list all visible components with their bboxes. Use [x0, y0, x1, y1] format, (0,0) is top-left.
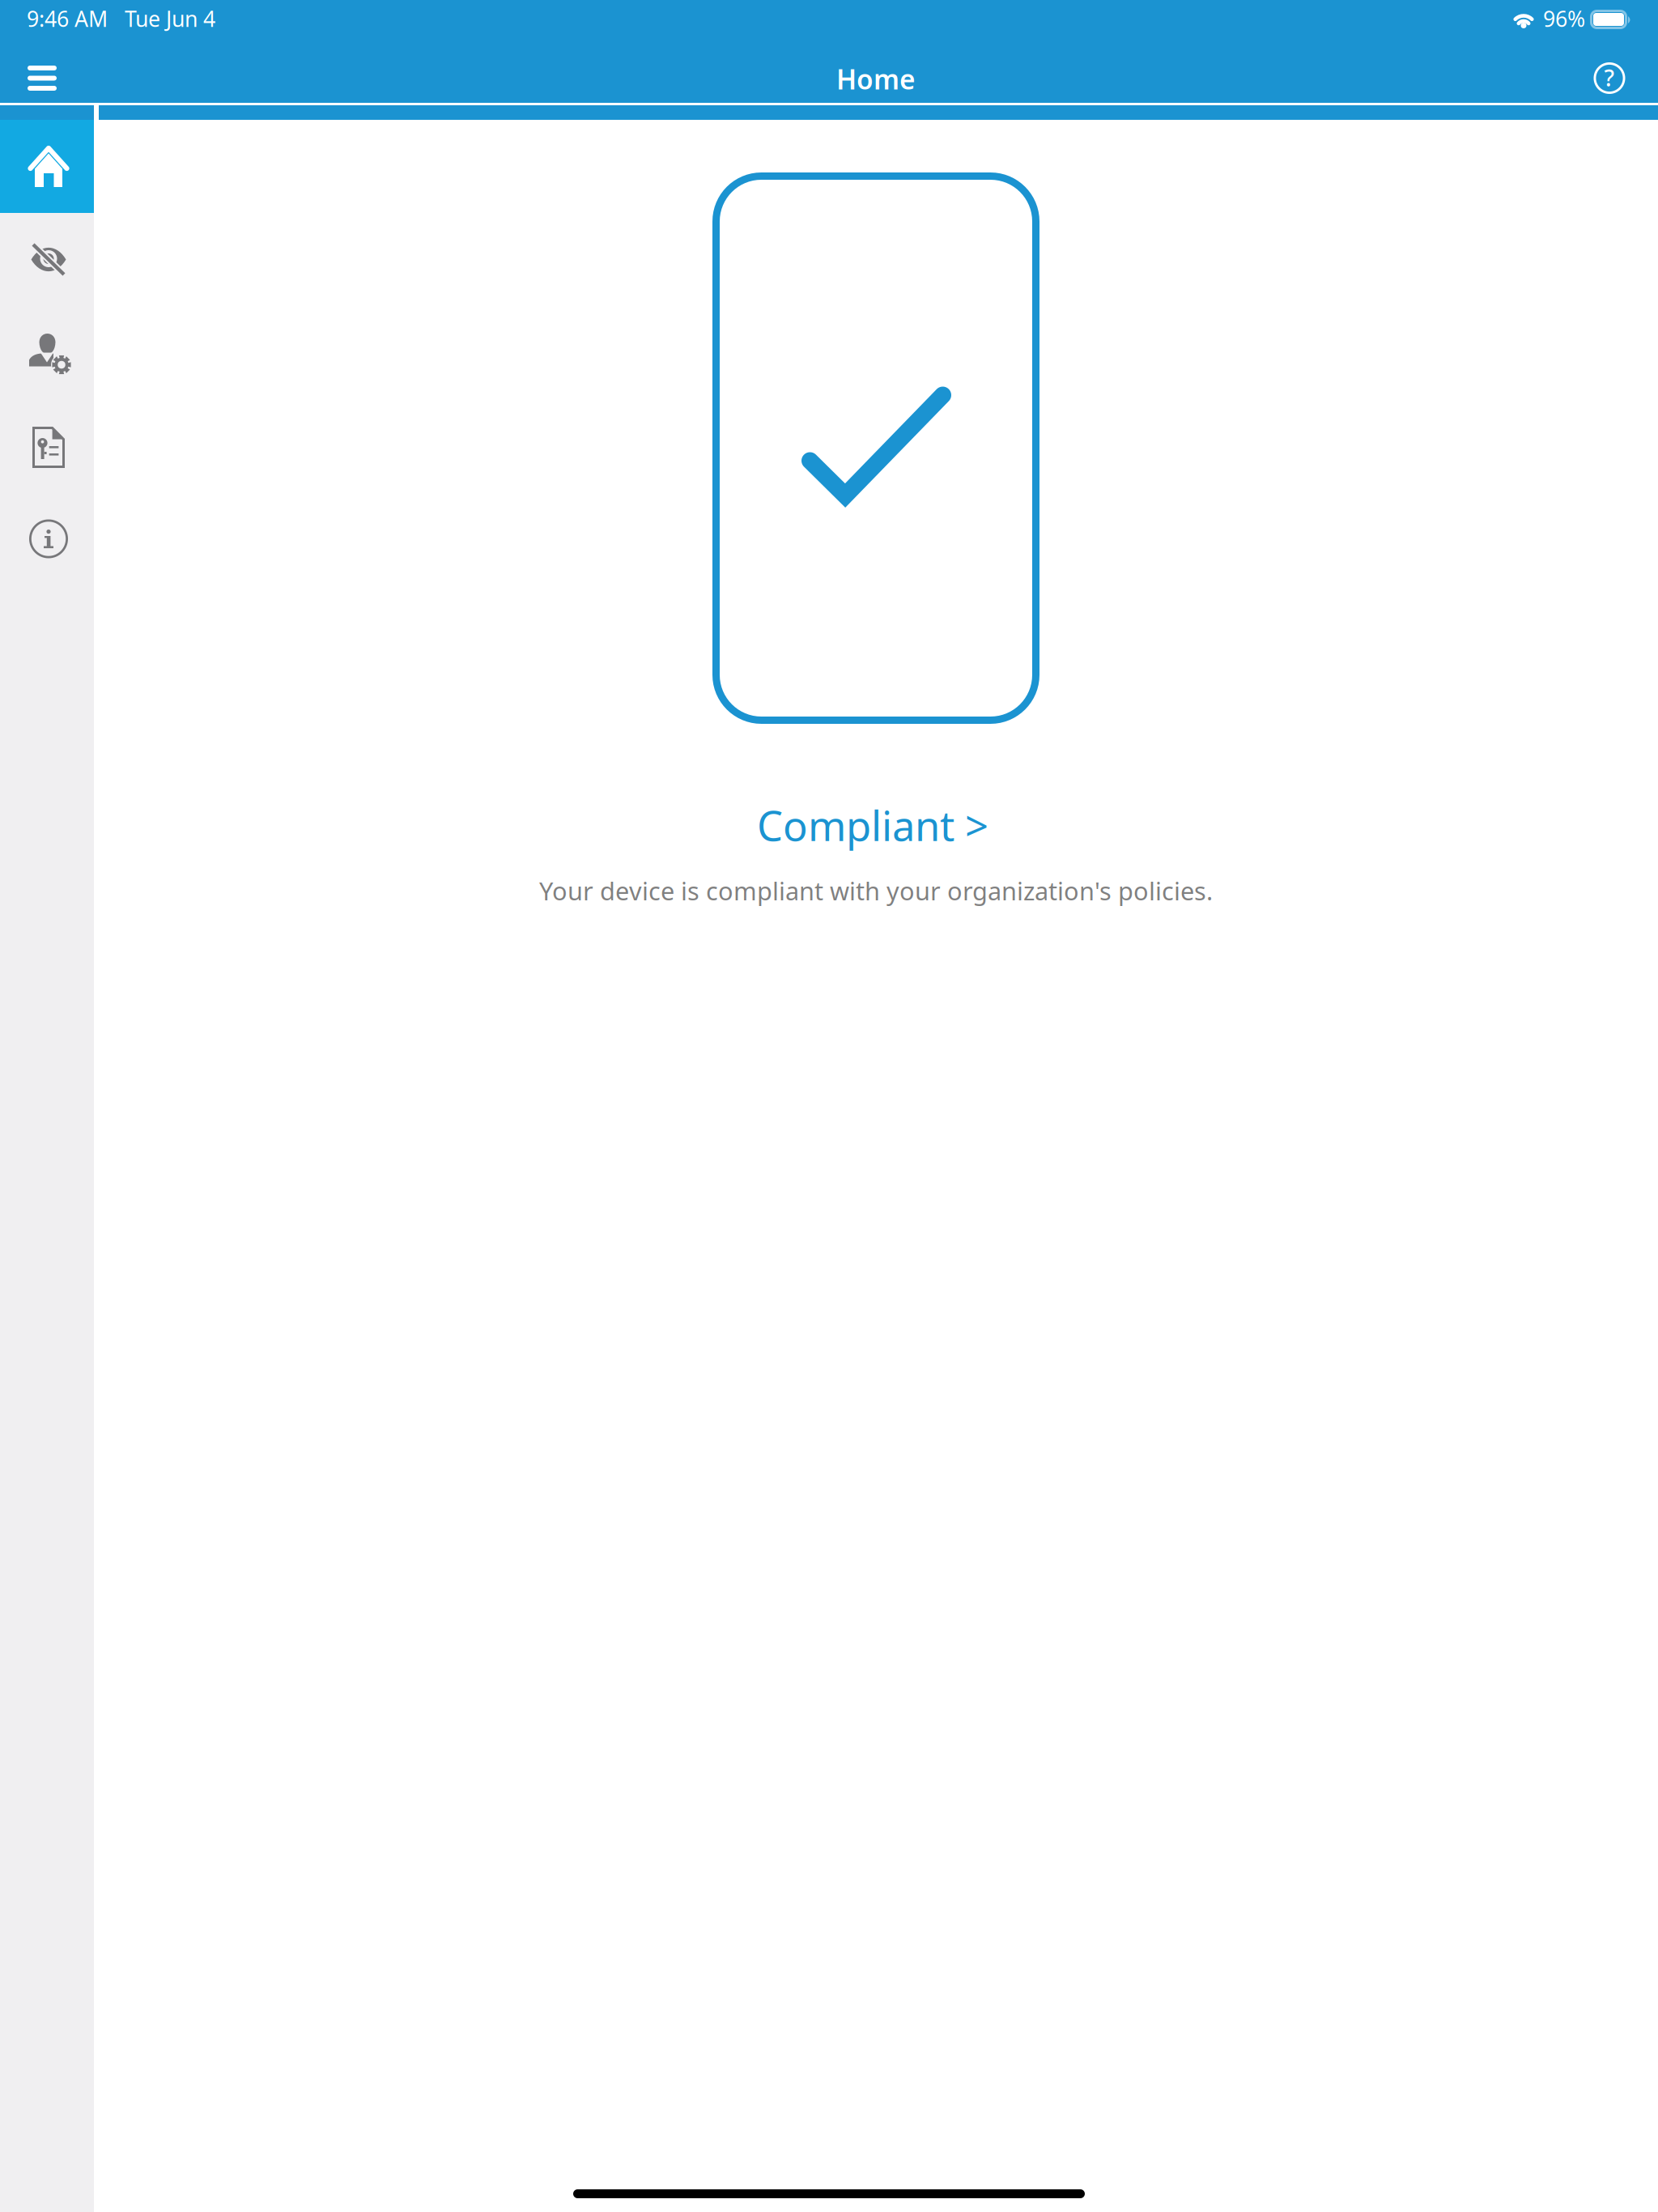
button[interactable]: About: [0, 492, 94, 585]
staticText: 96%: [1543, 4, 1585, 33]
button[interactable]: Menu: [6, 46, 78, 110]
button[interactable]: Home: [0, 120, 94, 213]
staticText: ?: [1604, 63, 1615, 93]
staticText: Home: [836, 61, 916, 97]
button[interactable]: Help: [1574, 46, 1645, 110]
button[interactable]: Privacy: [0, 213, 94, 306]
staticText: Your device is compliant with your organ…: [539, 874, 1213, 907]
staticText: 9:46 AM Tue Jun 4: [27, 4, 215, 33]
button[interactable]: Compliant: [695, 793, 1051, 857]
button[interactable]: Certificates: [0, 399, 94, 492]
staticText: Compliant >: [757, 798, 988, 852]
button[interactable]: My Device: [0, 306, 94, 399]
